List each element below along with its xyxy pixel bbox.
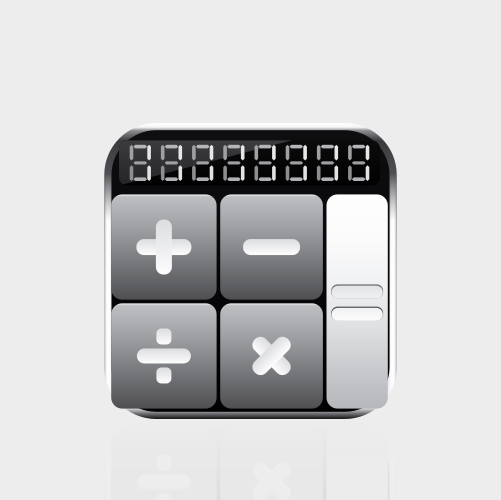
button[interactable]: Equals: [326, 194, 388, 409]
button[interactable]: Add: [111, 194, 217, 300]
button[interactable]: Subtract: [220, 194, 323, 300]
button[interactable]: Divide: [111, 303, 217, 409]
button[interactable]: Multiply: [220, 303, 323, 409]
